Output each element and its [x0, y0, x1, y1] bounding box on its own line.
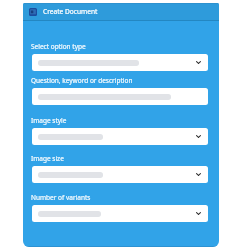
other: Document: [29, 8, 37, 16]
button[interactable]: Expand: [32, 166, 208, 183]
staticText: Select option type: [31, 42, 86, 51]
other: Expand: [196, 61, 201, 64]
button[interactable]: Expand: [32, 54, 208, 71]
staticText: Number of variants: [31, 193, 91, 202]
staticText: Question, keyword or description: [31, 76, 133, 85]
other: Expand: [196, 212, 201, 215]
button[interactable]: Expand: [32, 128, 208, 145]
staticText: Create Document: [43, 7, 98, 16]
other: Expand: [196, 135, 201, 138]
staticText: Image style: [31, 116, 67, 125]
staticText: Image size: [31, 154, 64, 163]
button[interactable]: Expand: [32, 205, 208, 222]
button[interactable]: [32, 88, 208, 105]
button[interactable]: Document: [23, 3, 219, 20]
other: Expand: [196, 173, 201, 176]
